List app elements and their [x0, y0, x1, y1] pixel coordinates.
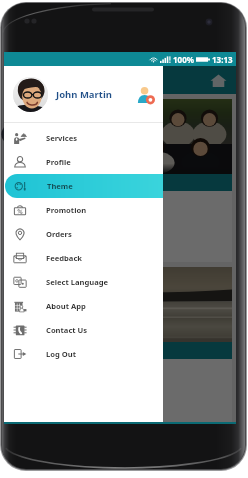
button[interactable]: None: [13, 232, 58, 246]
button[interactable]: Contact Us: [4, 318, 163, 342]
staticText: 13:13: [212, 54, 233, 65]
button[interactable]: John Martin: [13, 66, 155, 122]
button[interactable]: Home: [210, 72, 227, 89]
button[interactable]: Feedback: [4, 246, 163, 270]
staticText: Select Language: [46, 277, 109, 287]
staticText: Feedback: [46, 253, 83, 263]
staticText: About App: [46, 301, 86, 311]
button[interactable]: Orders: [4, 222, 163, 246]
button[interactable]: John Martin: [4, 66, 163, 424]
button[interactable]: Promotion: [4, 198, 163, 222]
button[interactable]: of bulbs- hanging: [7, 99, 232, 262]
button[interactable]: Select Language: [4, 270, 163, 294]
button[interactable]: Profile: [4, 150, 163, 174]
staticText: Profile: [46, 157, 71, 167]
staticText: Promotion: [46, 205, 87, 215]
staticText: John Martin: [56, 88, 112, 101]
staticText: Theme: [47, 181, 73, 191]
button[interactable]: ting your reception: [7, 267, 232, 424]
button[interactable]: Services: [4, 126, 163, 150]
staticText: Log Out: [46, 349, 77, 359]
button[interactable]: Log Out: [4, 342, 163, 366]
button[interactable]: Edit profile: [136, 85, 155, 104]
staticText: Orders: [46, 229, 72, 239]
staticText: None: [31, 232, 58, 246]
staticText: Services: [46, 133, 77, 143]
staticText: 100%: [173, 54, 194, 65]
staticText: Contact Us: [46, 325, 88, 335]
button[interactable]: About App: [4, 294, 163, 318]
button[interactable]: Theme: [5, 174, 163, 198]
staticText: of bulbs- hanging: [15, 205, 90, 217]
